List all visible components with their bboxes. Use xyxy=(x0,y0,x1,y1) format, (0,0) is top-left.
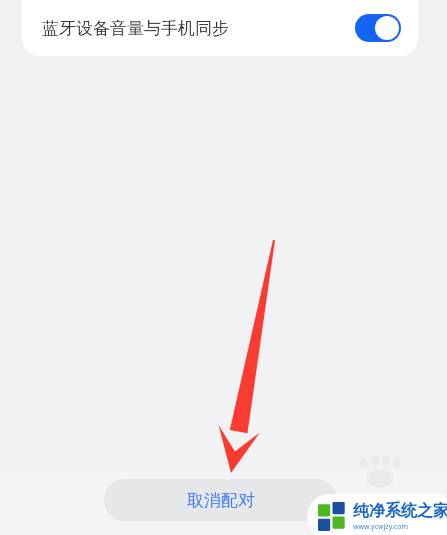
staticText: 取消配对 xyxy=(187,490,255,511)
staticText: 蓝牙设备音量与手机同步 xyxy=(42,18,229,39)
button[interactable]: 取消配对 xyxy=(104,479,337,521)
button[interactable]: Sync Bluetooth volume toggle xyxy=(355,14,401,42)
staticText: www.ycwjzy.com xyxy=(353,522,408,532)
staticText: 纯净系统之家 xyxy=(353,501,447,521)
button[interactable]: 蓝牙设备音量与手机同步 xyxy=(22,0,418,56)
